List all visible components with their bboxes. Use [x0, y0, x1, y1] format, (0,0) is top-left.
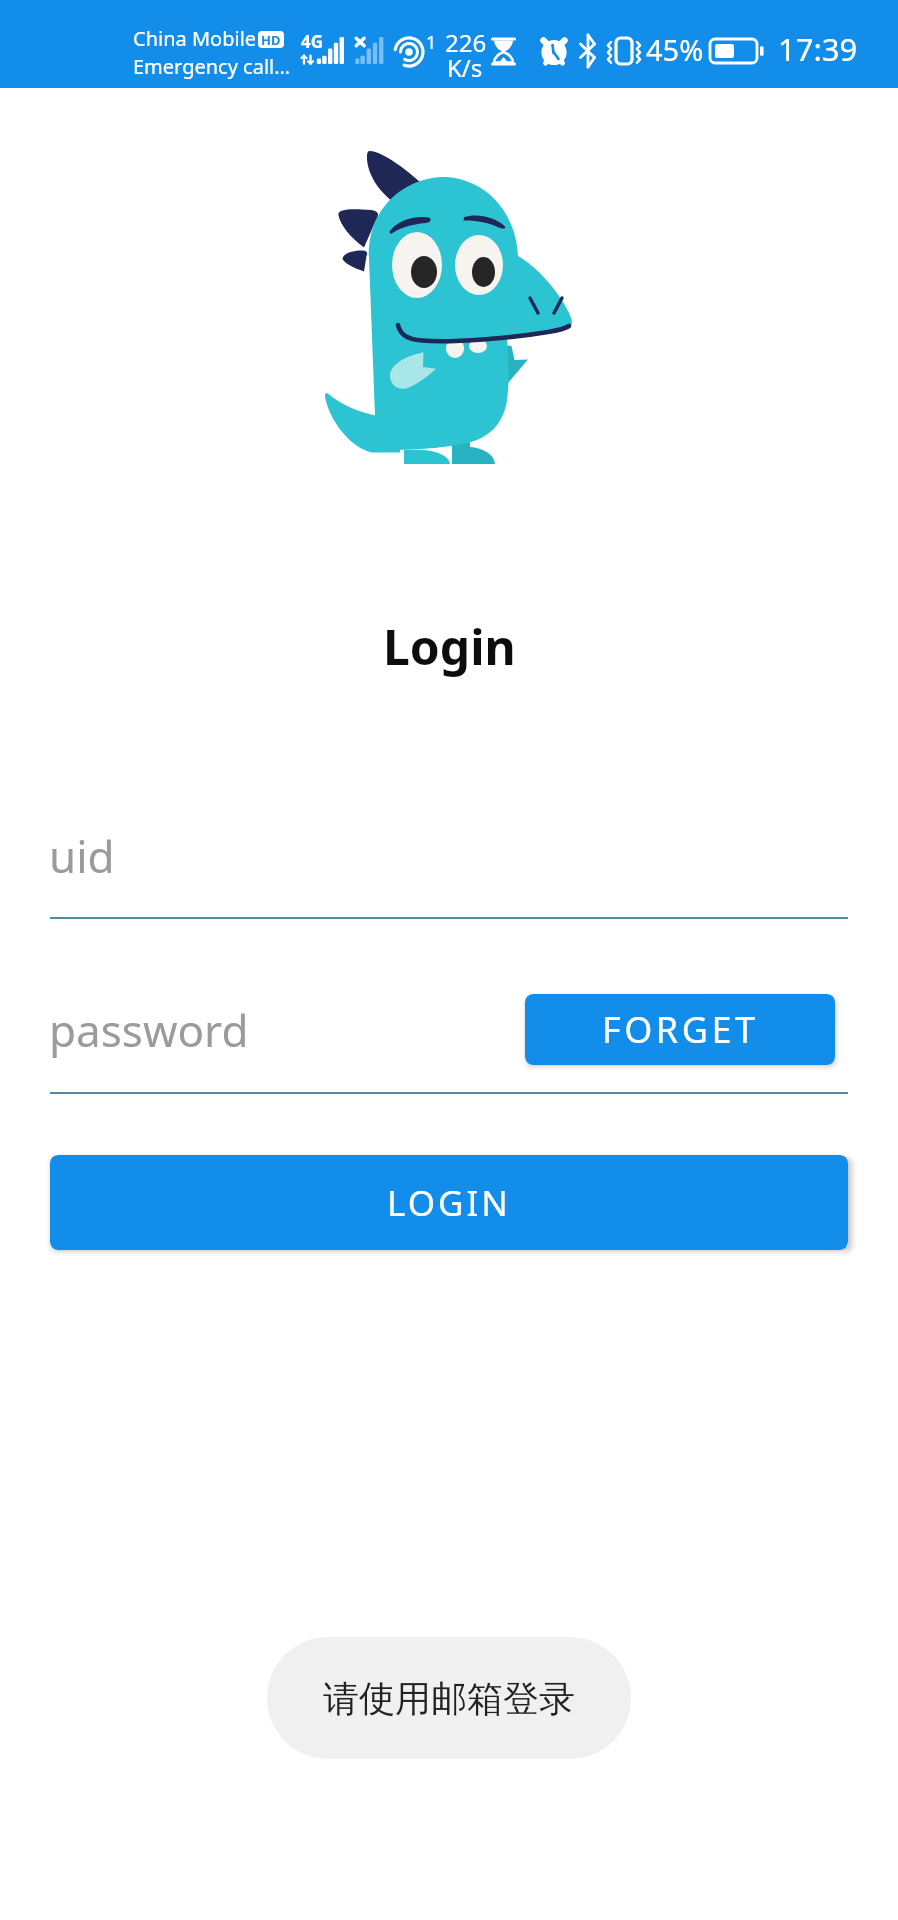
staticText: HD	[261, 31, 281, 48]
staticText: China Mobile	[133, 25, 257, 52]
staticText: uid	[49, 826, 115, 886]
staticText: FORGET	[602, 1005, 759, 1054]
staticText: LOGIN	[387, 1179, 511, 1227]
staticText: 请使用邮箱登录	[323, 1676, 575, 1721]
staticText: password	[49, 1000, 249, 1060]
button[interactable]: FORGET	[525, 994, 835, 1065]
staticText: 226	[445, 26, 487, 59]
staticText: K/s	[447, 51, 483, 84]
staticText: 1	[426, 30, 437, 55]
staticText: 45%	[646, 30, 704, 69]
staticText: 4G	[301, 30, 324, 53]
button[interactable]: LOGIN	[50, 1155, 848, 1250]
staticText: Login	[383, 614, 516, 679]
staticText: 17:39	[778, 28, 858, 70]
staticText: Emergency call…	[133, 53, 291, 80]
